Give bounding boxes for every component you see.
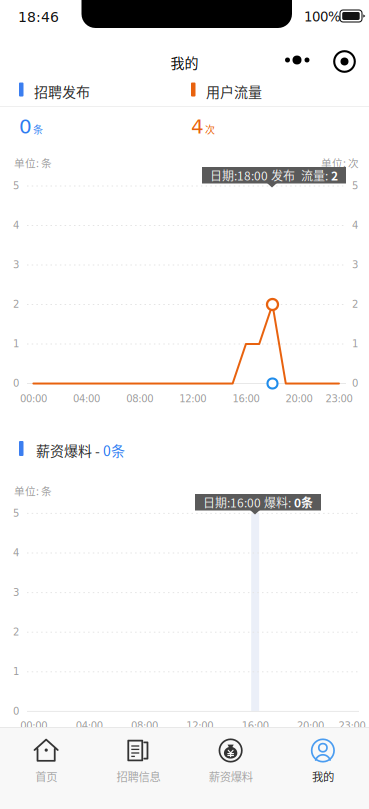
staticText: 00:00 — [20, 393, 47, 405]
staticText: 4 — [13, 219, 19, 231]
staticText: 日期:16:00 爆料: — [203, 494, 294, 511]
staticText: 0条 — [294, 494, 313, 511]
button[interactable]: 首页 — [0, 727, 92, 809]
staticText: 用户流量 — [206, 81, 262, 101]
staticText: 3 — [352, 259, 358, 271]
staticText: 5 — [13, 507, 19, 519]
staticText: 5 — [352, 180, 358, 192]
staticText: 日期:18:00 发布 流量: — [210, 167, 331, 184]
staticText: 3 — [13, 587, 19, 598]
button[interactable]: More options — [279, 47, 317, 73]
staticText: 0 — [13, 705, 19, 717]
staticText: 薪资爆料 — [209, 768, 253, 784]
staticText: 1 — [13, 338, 19, 350]
staticText: 2 — [13, 298, 19, 310]
button[interactable]: 招聘信息 — [92, 727, 184, 809]
staticText: 5 — [13, 180, 19, 192]
button[interactable]: 薪资爆料 — [184, 727, 277, 809]
staticText: 1 — [352, 338, 358, 350]
staticText: 薪资爆料 - — [36, 440, 103, 460]
staticText: 16:00 — [232, 393, 259, 405]
staticText: 2 — [13, 626, 19, 638]
staticText: 04:00 — [76, 720, 103, 732]
staticText: 20:00 — [297, 720, 324, 732]
staticText: 首页 — [35, 768, 57, 784]
staticText: 0 — [352, 377, 358, 389]
staticText: 0条 — [103, 440, 125, 460]
staticText: 08:00 — [126, 393, 153, 405]
staticText: 12:00 — [186, 720, 213, 732]
staticText: 0 — [19, 115, 32, 138]
staticText: 23:00 — [325, 393, 352, 405]
staticText: 单位: 条 — [14, 483, 52, 498]
staticText: 2 — [352, 298, 358, 310]
staticText: 20:00 — [286, 393, 313, 405]
staticText: 单位: 条 — [14, 155, 52, 170]
staticText: 4 — [191, 115, 204, 138]
staticText: 条 — [33, 122, 43, 136]
staticText: 我的 — [170, 52, 198, 72]
button[interactable]: 我的 — [277, 727, 369, 809]
staticText: 3 — [13, 259, 19, 271]
staticText: 0 — [13, 377, 19, 389]
staticText: 12:00 — [179, 393, 206, 405]
staticText: 招聘信息 — [116, 768, 160, 784]
button[interactable]: Close mini program — [327, 44, 362, 79]
staticText: 16:00 — [242, 720, 269, 732]
staticText: 100% — [304, 9, 341, 24]
staticText: 00:00 — [20, 720, 47, 732]
staticText: 单位: 次 — [321, 155, 359, 170]
staticText: 18:46 — [18, 9, 59, 25]
staticText: 1 — [13, 666, 19, 677]
staticText: 08:00 — [131, 720, 158, 732]
staticText: 我的 — [312, 768, 334, 784]
staticText: 4 — [13, 547, 19, 559]
staticText: 23:00 — [338, 720, 365, 732]
staticText: 次 — [205, 122, 215, 136]
staticText: 2 — [331, 167, 338, 184]
staticText: 招聘发布 — [34, 81, 90, 101]
staticText: 04:00 — [73, 393, 100, 405]
staticText: 4 — [352, 219, 358, 231]
